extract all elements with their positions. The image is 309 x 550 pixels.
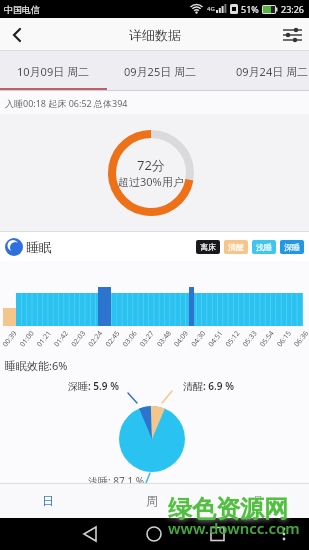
staticText: 中国电信 bbox=[4, 4, 40, 15]
button[interactable]: 日 bbox=[0, 483, 96, 518]
button[interactable] bbox=[276, 18, 309, 51]
staticText: 月 bbox=[252, 493, 264, 508]
staticText: 51% bbox=[241, 3, 259, 15]
staticText: 浅睡 bbox=[256, 242, 272, 252]
staticText: 4G bbox=[207, 5, 215, 13]
staticText: 清醒 bbox=[228, 242, 244, 252]
staticText: 10月09日 周二 bbox=[17, 64, 90, 79]
staticText: 09月24日 周二 bbox=[236, 64, 309, 79]
staticText: 超过30%用户 bbox=[118, 174, 184, 189]
button[interactable]: 清醒 bbox=[224, 240, 248, 254]
staticText: 72分 bbox=[137, 156, 165, 174]
staticText: 睡眠 bbox=[26, 239, 52, 255]
staticText: 详细数据 bbox=[129, 27, 181, 43]
staticText: 浅睡: 87.1 % bbox=[88, 474, 145, 488]
staticText: www.downcc.com bbox=[168, 518, 300, 538]
staticText: 睡眠效能:6% bbox=[5, 358, 68, 373]
button[interactable]: 浅睡 bbox=[252, 240, 276, 254]
button[interactable]: 09月24日 周二 bbox=[234, 51, 309, 91]
button[interactable]: 离床 bbox=[196, 240, 220, 254]
staticText: 深睡 bbox=[284, 242, 300, 252]
staticText: 深睡: 5.9 % bbox=[68, 379, 119, 393]
button[interactable] bbox=[0, 18, 33, 51]
staticText: 入睡00:18 起床 06:52 总体394 bbox=[5, 97, 128, 109]
button[interactable]: 月 bbox=[210, 483, 306, 518]
staticText: 离床 bbox=[200, 242, 216, 252]
button[interactable]: 10月09日 周二 bbox=[0, 51, 107, 91]
button[interactable]: 周 bbox=[104, 483, 200, 518]
staticText: 清醒: 6.9 % bbox=[183, 379, 234, 393]
button[interactable]: 09月25日 周二 bbox=[107, 51, 214, 91]
staticText: 日 bbox=[42, 493, 54, 508]
staticText: 09月25日 周二 bbox=[124, 64, 197, 79]
button[interactable]: 深睡 bbox=[280, 240, 304, 254]
staticText: 23:26 bbox=[281, 3, 305, 15]
staticText: 周 bbox=[146, 493, 158, 508]
staticText: 绿色资源网 bbox=[168, 494, 288, 524]
